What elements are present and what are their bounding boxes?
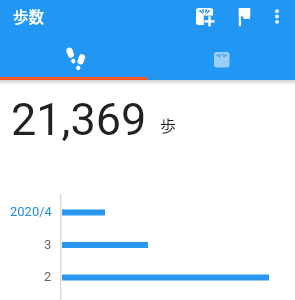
staticText: 3 [44,237,52,252]
button[interactable] [230,3,260,33]
button[interactable] [192,3,222,33]
staticText: 歩数 [13,5,45,27]
staticText: 歩 [160,113,177,136]
button[interactable] [147,38,295,80]
staticText: 2020/4 [10,204,52,219]
staticText: 21,369 [11,93,147,146]
button[interactable] [0,38,147,80]
button[interactable] [262,3,292,33]
staticText: 2 [44,269,52,284]
